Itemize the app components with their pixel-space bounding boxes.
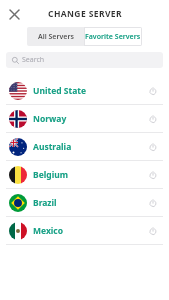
staticText: Belgium	[33, 169, 68, 181]
staticText: CHANGE SERVER	[48, 8, 122, 20]
staticText: Search	[22, 55, 45, 65]
staticText: Favorite Servers	[85, 32, 141, 42]
button[interactable]: Connect to Mexico	[146, 224, 160, 238]
button[interactable]: All Servers	[27, 27, 84, 46]
staticText: Brazil	[33, 197, 57, 209]
staticText: Australia	[33, 141, 72, 153]
button[interactable]: Close	[4, 4, 24, 24]
button[interactable]: Connect to Australia	[146, 140, 160, 154]
button[interactable]: Brazil	[0, 189, 169, 217]
staticText: United State	[33, 85, 87, 97]
staticText: Mexico	[33, 225, 64, 237]
button[interactable]: Mexico	[0, 217, 169, 245]
button[interactable]: Favorite Servers	[84, 27, 142, 46]
staticText: Norway	[33, 113, 67, 125]
button[interactable]: Connect to Norway	[146, 112, 160, 126]
button[interactable]: Australia	[0, 133, 169, 161]
button[interactable]: Connect to United State	[146, 84, 160, 98]
button[interactable]: Search	[6, 52, 163, 68]
button[interactable]: Connect to Belgium	[146, 168, 160, 182]
button[interactable]: Norway	[0, 105, 169, 133]
button[interactable]: United State	[0, 77, 169, 105]
staticText: All Servers	[38, 32, 74, 42]
button[interactable]: Connect to Brazil	[146, 196, 160, 210]
button[interactable]: Belgium	[0, 161, 169, 189]
